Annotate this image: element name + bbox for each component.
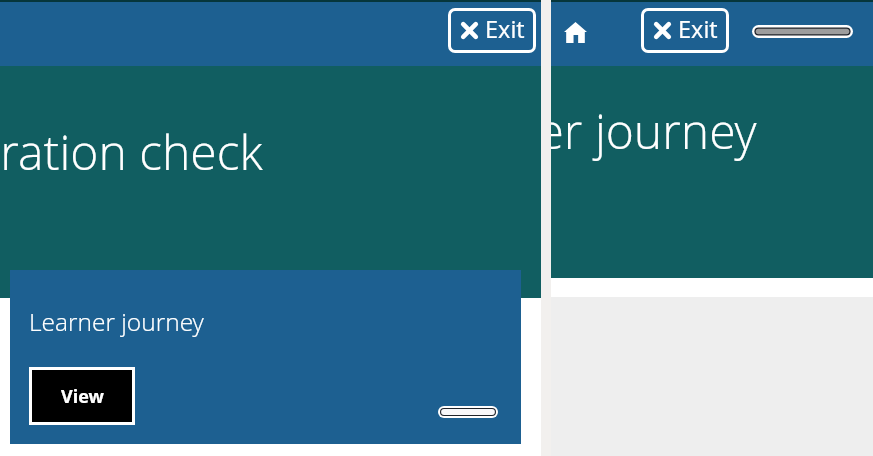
staticText: Registration check (0, 119, 263, 184)
other: Progress (752, 25, 853, 38)
staticText: Exit (678, 13, 718, 45)
staticText: View (61, 384, 104, 409)
button[interactable]: Exit (641, 8, 729, 53)
button[interactable]: Learner journey (10, 270, 521, 444)
staticText: Learner journey (551, 98, 757, 163)
staticText: Exit (485, 13, 525, 45)
button[interactable]: Exit (448, 8, 536, 53)
button[interactable]: View (32, 370, 132, 422)
button[interactable]: Home (553, 10, 597, 54)
staticText: Learner journey (29, 305, 204, 338)
